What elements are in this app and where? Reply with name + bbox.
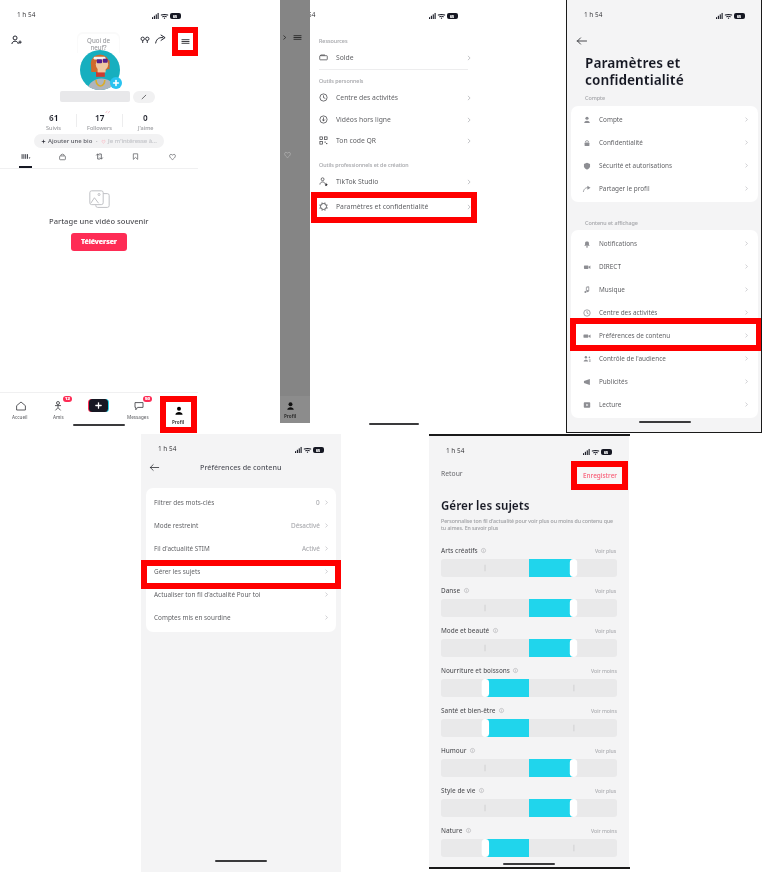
button[interactable]: Back	[574, 33, 590, 49]
staticText: Retour	[441, 469, 463, 478]
button[interactable]: 12	[52, 399, 65, 420]
staticText: Paramètres et confidentialité	[336, 202, 429, 211]
button[interactable]: Voir plus	[595, 747, 617, 754]
staticText: Suivis	[46, 124, 61, 132]
staticText: Mode et beauté	[441, 626, 490, 635]
staticText: Outils professionnels et de création	[319, 161, 409, 168]
button[interactable]: Partager le profil	[571, 177, 758, 200]
button[interactable]	[441, 719, 617, 737]
button[interactable]: Liked	[163, 149, 181, 163]
button[interactable]: Edit profile	[133, 91, 155, 103]
staticText: Comptes mis en sourdine	[154, 613, 231, 622]
button[interactable]: Paramètres et confidentialité	[313, 196, 475, 217]
button[interactable]: Notifications	[571, 232, 758, 255]
staticText: Préférences de contenu	[200, 462, 282, 472]
button[interactable]: Accueil	[12, 399, 28, 420]
button[interactable]: Compte	[571, 108, 758, 131]
button[interactable]: Sécurité et autorisations	[571, 154, 758, 177]
staticText: Notifications	[599, 239, 638, 248]
staticText: 1 h 54	[17, 10, 36, 19]
staticText: 17	[95, 112, 105, 123]
button[interactable]: Share	[154, 33, 167, 46]
button[interactable]: Mode restreint	[146, 514, 336, 537]
staticText: 1 h 54	[297, 10, 316, 19]
button[interactable]: Voir moins	[591, 827, 617, 834]
button[interactable]	[311, 192, 477, 223]
staticText: Enregistrer	[583, 471, 617, 480]
button[interactable]	[441, 679, 617, 697]
staticText: Sécurité et autorisations	[599, 161, 673, 170]
button[interactable]: Private	[53, 149, 71, 163]
staticText: Voir plus	[595, 627, 617, 634]
staticText: Activé	[302, 544, 320, 553]
button[interactable]	[441, 839, 617, 857]
button[interactable]	[441, 799, 617, 817]
button[interactable]: Contrôle de l'audience	[571, 347, 758, 370]
button[interactable]: Confidentialité	[571, 131, 758, 154]
button[interactable]	[441, 759, 617, 777]
button[interactable]	[88, 399, 109, 412]
button[interactable]: TikTok Studio	[313, 171, 475, 192]
staticText: Contrôle de l'audience	[599, 354, 666, 363]
button[interactable]: Préférences de contenu	[571, 324, 758, 347]
staticText: 0	[143, 112, 148, 123]
staticText: Gérer les sujets	[154, 567, 201, 576]
button[interactable]: Reposts	[90, 149, 108, 163]
staticText: Ajouter une bio	[48, 137, 93, 145]
staticText: 1 h 54	[446, 446, 465, 455]
button[interactable]: Voir plus	[595, 587, 617, 594]
staticText: Solde	[336, 53, 354, 62]
button[interactable]: Centre des activités	[571, 301, 758, 324]
button[interactable]: 50	[127, 399, 149, 420]
staticText: ·	[93, 137, 101, 145]
staticText: 65	[604, 450, 609, 455]
button[interactable]: Solde	[313, 47, 475, 68]
button[interactable]: Add friends	[8, 32, 24, 48]
button[interactable]: Gérer les sujets	[146, 560, 336, 583]
button[interactable]: Centre des activités	[313, 87, 475, 108]
button[interactable]	[441, 639, 617, 657]
button[interactable]: Voir plus	[595, 547, 617, 554]
button[interactable]: Voir plus	[595, 787, 617, 794]
button[interactable]: Vidéos hors ligne	[313, 109, 475, 130]
button[interactable]: Friends	[138, 33, 151, 46]
button[interactable]: Voir moins	[591, 667, 617, 674]
button[interactable]: Retour	[441, 469, 463, 478]
button[interactable]: Enregistrer	[571, 461, 628, 490]
button[interactable]	[441, 599, 617, 617]
staticText: Filtrer des mots-clés	[154, 498, 215, 507]
staticText: Désactivé	[291, 521, 320, 530]
button[interactable]: Actualiser ton fil d'actualité Pour toi	[146, 583, 336, 606]
staticText: Gérer les sujets	[441, 498, 530, 514]
staticText: Humour	[441, 746, 467, 755]
button[interactable]: Musique	[571, 278, 758, 301]
button[interactable]	[570, 318, 762, 351]
staticText: Paramètres et confidentialité	[585, 54, 684, 89]
button[interactable]: Ton code QR	[313, 130, 475, 151]
button[interactable]: Videos	[16, 149, 34, 163]
staticText: Partager le profil	[599, 184, 650, 193]
button[interactable]: DIRECT	[571, 255, 758, 278]
button[interactable]: Profil	[160, 396, 197, 433]
button[interactable]: Voir plus	[595, 627, 617, 634]
button[interactable]: Comptes mis en sourdine	[146, 606, 336, 629]
button[interactable]: Menu	[172, 27, 198, 56]
button[interactable]: Back	[149, 460, 163, 474]
button[interactable]: Saved	[126, 149, 144, 163]
button[interactable]: Fil d'actualité STIM	[146, 537, 336, 560]
button[interactable]	[441, 559, 617, 577]
staticText: J'aime	[138, 124, 154, 132]
button[interactable]: Lecture	[571, 393, 758, 416]
button[interactable]: Voir moins	[591, 707, 617, 714]
staticText: Personnalise ton fil d'actualité pour vo…	[441, 517, 618, 531]
staticText: Je m'intéresse à...	[108, 137, 157, 145]
button[interactable]: Add avatar	[110, 77, 122, 89]
button[interactable]: Filtrer des mots-clés	[146, 491, 336, 514]
button[interactable]: Téléverser	[71, 233, 127, 251]
staticText: 65	[737, 14, 742, 19]
staticText: Messages	[127, 414, 149, 420]
button[interactable]: Publicités	[571, 370, 758, 393]
staticText: Profil	[172, 419, 185, 425]
button[interactable]: Ajouter une bio	[34, 134, 164, 148]
button[interactable]	[141, 560, 341, 589]
